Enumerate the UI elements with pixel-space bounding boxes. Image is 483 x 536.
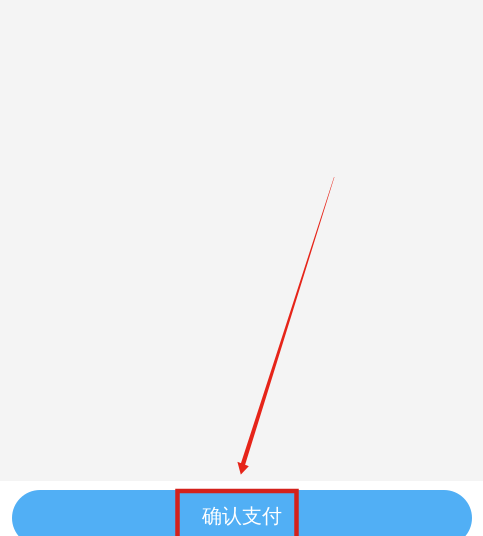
staticText: 确认支付 xyxy=(202,504,282,528)
button[interactable]: 确认支付 xyxy=(12,490,472,536)
